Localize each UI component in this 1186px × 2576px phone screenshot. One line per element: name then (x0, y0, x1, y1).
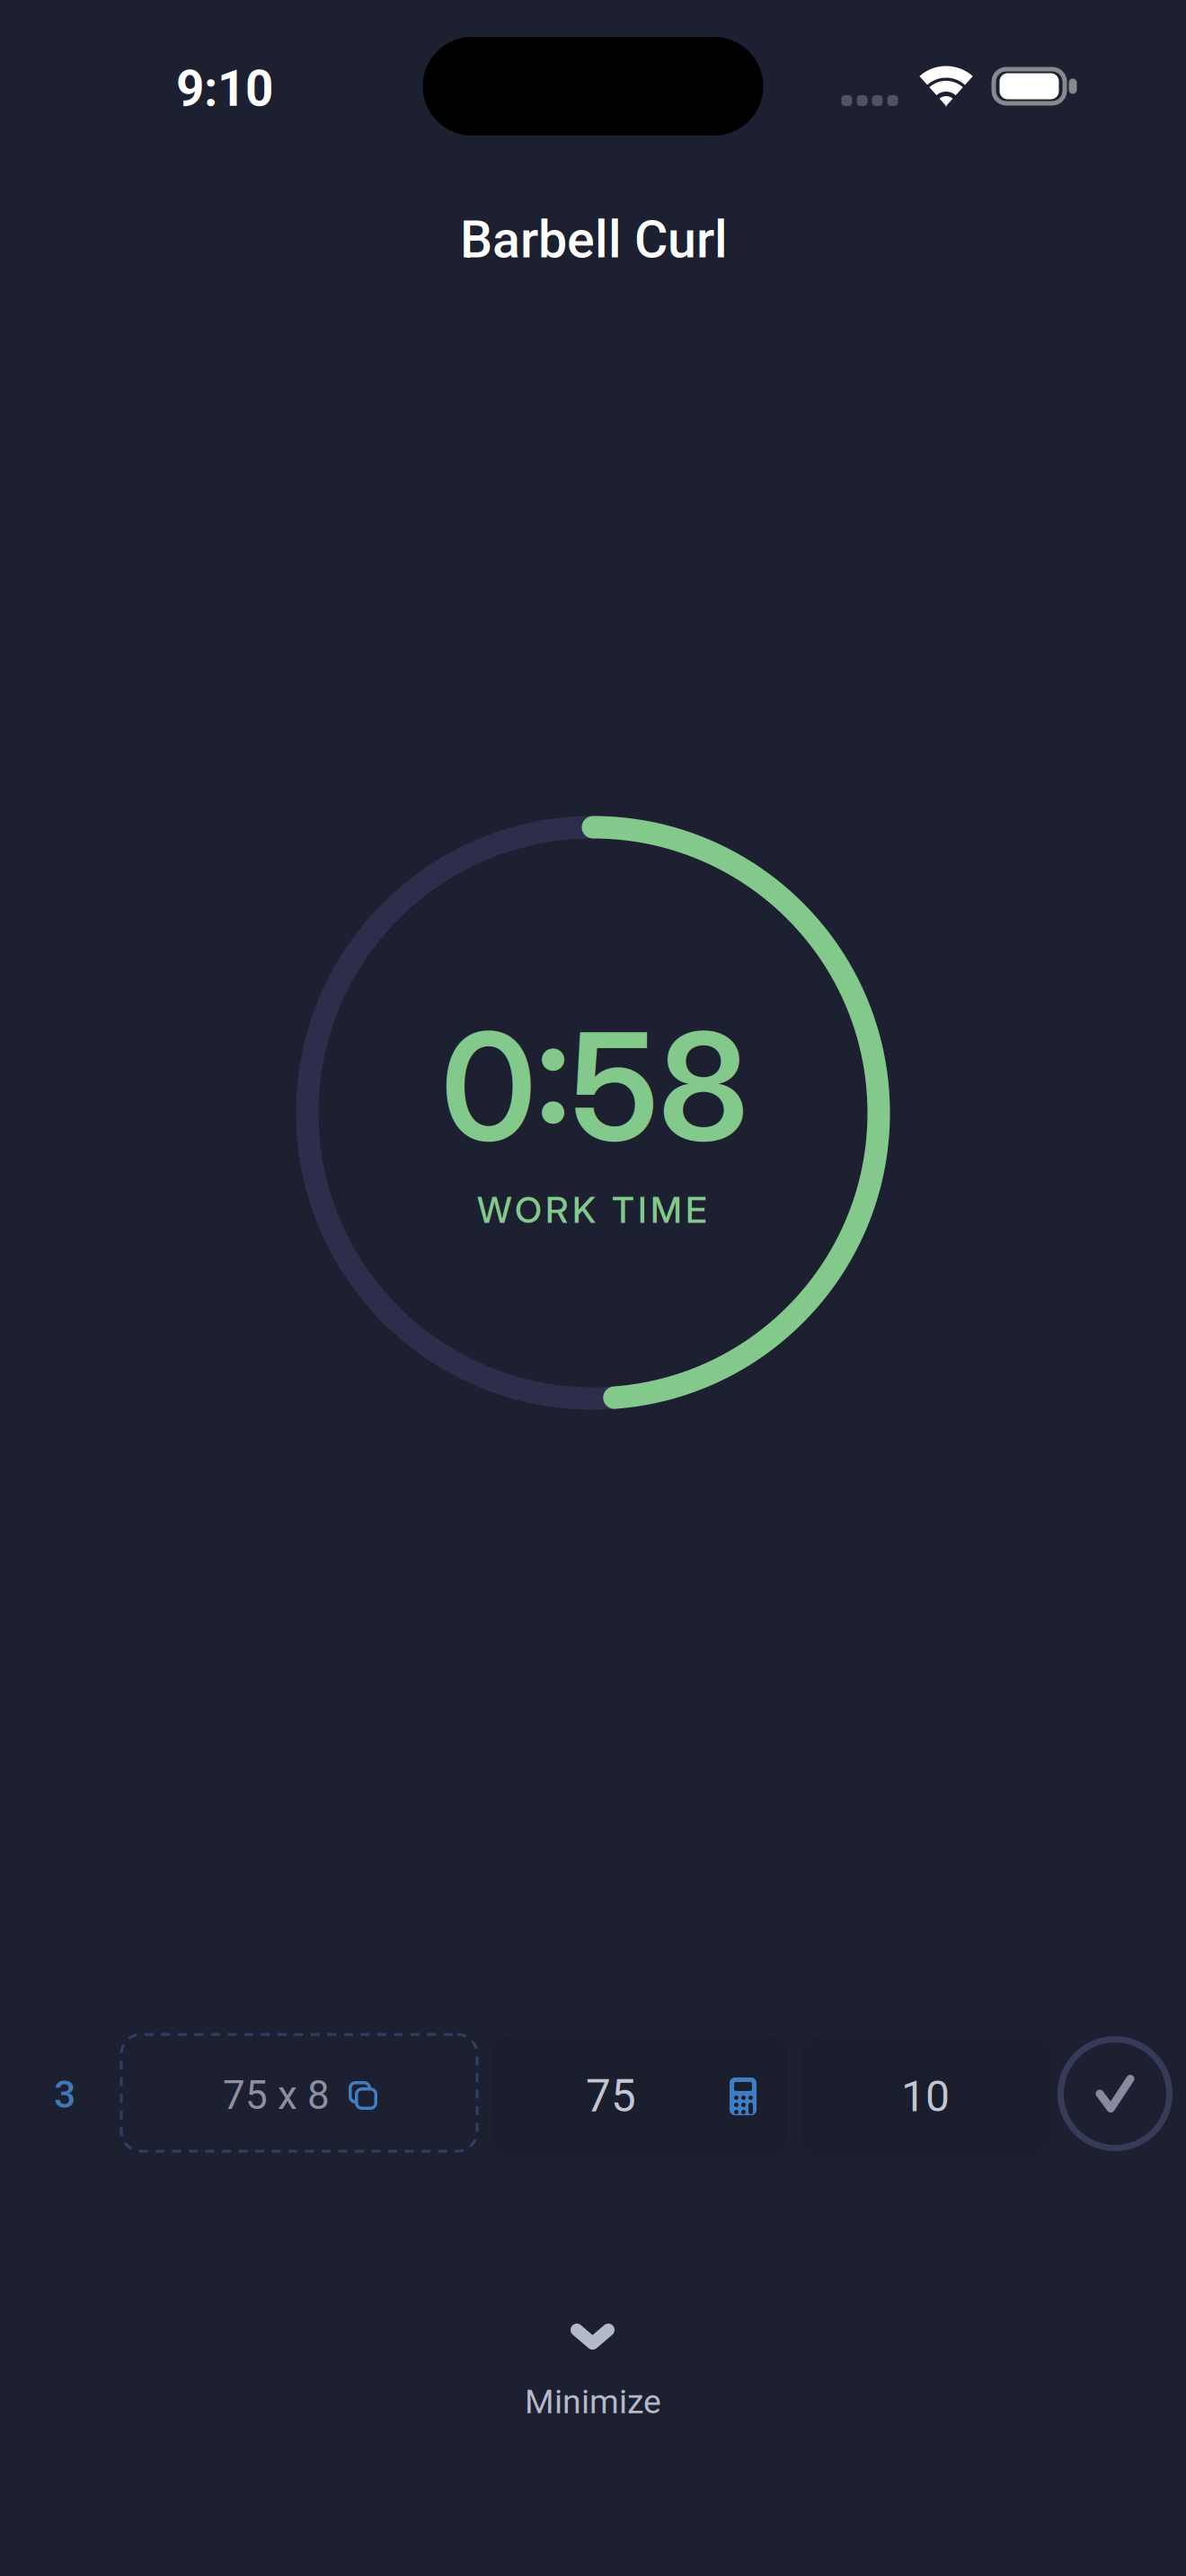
button[interactable]: 75 (492, 2035, 787, 2157)
staticText: 75 x 8 (223, 2072, 330, 2119)
staticText: WORK TIME (477, 1188, 707, 1232)
button[interactable]: Complete set (1058, 2036, 1173, 2151)
button[interactable]: Minimize (449, 2317, 737, 2443)
staticText: 75 (586, 2070, 636, 2122)
staticText: Barbell Curl (460, 210, 728, 270)
staticText: 3 (54, 2072, 75, 2117)
button[interactable]: 10 (802, 2035, 1049, 2157)
staticText: 9:10 (176, 60, 273, 118)
staticText: Minimize (525, 2382, 661, 2421)
staticText: 0:58 (441, 996, 748, 1176)
button[interactable]: 75 x 8 (120, 2033, 478, 2153)
staticText: 10 (901, 2071, 950, 2122)
